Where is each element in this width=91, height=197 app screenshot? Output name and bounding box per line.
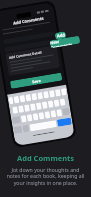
button[interactable]: [43, 91, 49, 99]
button[interactable]: [50, 110, 56, 118]
button[interactable]: [22, 125, 29, 132]
button[interactable]: [19, 95, 25, 103]
button[interactable]: [55, 89, 61, 97]
staticText: New Comments: [49, 36, 80, 48]
button[interactable]: [48, 100, 54, 108]
button[interactable]: [57, 117, 72, 127]
staticText: Add Comments: [13, 16, 44, 26]
button[interactable]: [59, 98, 66, 106]
button[interactable]: [25, 94, 31, 102]
button[interactable]: Add: [54, 31, 66, 40]
button[interactable]: [54, 99, 60, 107]
button[interactable]: [27, 114, 33, 122]
button[interactable]: [62, 108, 70, 116]
button[interactable]: [36, 102, 42, 110]
button[interactable]: [61, 88, 67, 96]
button[interactable]: [37, 92, 43, 100]
staticText: Add: [57, 32, 65, 39]
button[interactable]: [29, 120, 57, 131]
staticText: Add Comment Detail: [9, 50, 42, 60]
button[interactable]: [12, 106, 18, 114]
button[interactable]: [13, 126, 22, 134]
button[interactable]: [21, 115, 27, 123]
button[interactable]: [30, 103, 36, 111]
button[interactable]: Save: [10, 72, 62, 89]
button[interactable]: [32, 113, 39, 121]
button[interactable]: [56, 109, 62, 117]
button[interactable]: New Comments: [49, 36, 80, 48]
button[interactable]: [49, 90, 55, 98]
button[interactable]: [18, 105, 24, 113]
staticText: Save: [32, 78, 42, 84]
staticText: Jot down your thoughts and notes for eac…: [6, 166, 85, 187]
button[interactable]: [8, 97, 14, 104]
staticText: Add Comments: [17, 153, 75, 163]
button[interactable]: [13, 96, 20, 104]
button[interactable]: [44, 111, 50, 119]
button[interactable]: [31, 93, 37, 101]
button[interactable]: [24, 104, 30, 112]
button[interactable]: [12, 116, 21, 124]
button[interactable]: [42, 101, 48, 109]
button[interactable]: [38, 112, 45, 120]
